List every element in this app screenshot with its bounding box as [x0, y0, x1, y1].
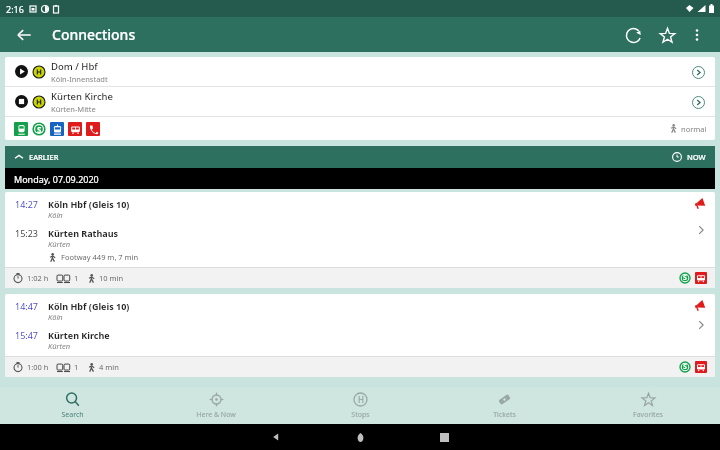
staticText: Köln Hbf (Gleis 10) — [48, 300, 130, 312]
staticText: NOW — [687, 152, 706, 162]
staticText: H — [358, 394, 364, 405]
staticText: Footway 449 m, 7 min — [61, 252, 139, 262]
staticText: 4 min — [99, 362, 119, 372]
staticText: Kürten Kirche — [48, 329, 110, 341]
button[interactable]: Back — [263, 424, 289, 450]
staticText: Search — [61, 410, 84, 420]
staticText: 1:02 h — [27, 273, 49, 283]
button[interactable]: 14:27 — [5, 192, 715, 288]
button[interactable]: Refresh — [618, 20, 648, 50]
staticText: Kürten Rathaus — [48, 227, 119, 239]
button[interactable]: Home — [347, 424, 373, 450]
button[interactable]: 14:47 — [5, 294, 715, 377]
button[interactable]: Recent apps — [431, 424, 457, 450]
button[interactable]: Favorite — [652, 20, 682, 50]
staticText: 10 min — [99, 273, 124, 283]
button[interactable]: Dom / Hbf — [5, 57, 715, 86]
staticText: S — [683, 273, 687, 283]
staticText: S — [683, 362, 687, 372]
staticText: Tickets — [493, 410, 516, 420]
button[interactable]: Now — [672, 152, 706, 162]
staticText: 2:16 — [6, 3, 24, 15]
staticText: S — [37, 124, 42, 135]
staticText: Köln Hbf (Gleis 10) — [48, 198, 130, 210]
staticText: Here & Now — [196, 410, 236, 420]
button[interactable]: More options — [684, 22, 710, 48]
staticText: 1 — [74, 362, 79, 372]
staticText: 15:23 — [15, 227, 48, 239]
staticText: 14:27 — [15, 198, 48, 210]
staticText: Kürten Kirche — [51, 90, 113, 103]
button[interactable]: EARLIER — [5, 146, 715, 168]
staticText: Dom / Hbf — [51, 60, 98, 73]
staticText: Stops — [351, 410, 370, 420]
staticText: 15:47 — [15, 329, 48, 341]
button[interactable]: Search — [0, 387, 144, 424]
staticText: Kürten-Mitte — [51, 104, 96, 114]
staticText: 1:00 h — [27, 362, 49, 372]
button[interactable]: Favorites — [576, 387, 720, 424]
staticText: 14:47 — [15, 300, 48, 312]
staticText: 1 — [74, 273, 79, 283]
staticText: Köln — [48, 312, 63, 322]
staticText: Monday, 07.09.2020 — [14, 173, 99, 185]
staticText: Favorites — [633, 410, 663, 420]
staticText: Kürten — [48, 341, 71, 351]
staticText: Köln — [48, 210, 63, 220]
staticText: EARLIER — [29, 152, 59, 162]
button[interactable]: Kürten Kirche — [5, 87, 715, 116]
button[interactable]: Tickets — [432, 387, 576, 424]
staticText: Köln-Innenstadt — [51, 74, 108, 84]
button[interactable]: Back — [10, 21, 38, 49]
staticText: Connections — [52, 25, 136, 44]
button[interactable]: Here & Now — [144, 387, 288, 424]
button[interactable]: H — [288, 387, 432, 424]
staticText: Kürten — [48, 239, 71, 249]
staticText: normal — [681, 124, 707, 134]
